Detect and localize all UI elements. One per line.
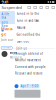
button[interactable]: Learn more <box>1 46 12 49</box>
staticText: A life that <box>1 12 9 19</box>
button[interactable]: Delete <box>34 6 36 9</box>
staticText: Wellness <box>9 56 21 59</box>
staticText: Apr 7 · 9:00 <box>21 84 39 88</box>
staticText: Through a blend of <box>15 52 43 55</box>
staticText: Natural <box>16 26 25 29</box>
staticText: 9:41 <box>2 0 9 5</box>
staticText: Tune in and take <box>16 19 39 22</box>
button[interactable]: Mark unread <box>40 6 42 9</box>
button[interactable]: More <box>52 6 54 9</box>
staticText: Recover and restore <box>15 72 43 75</box>
staticText: gets bow <box>1 21 7 28</box>
staticText: Get notified the <box>16 33 40 36</box>
staticText: Tuned in to the <box>16 12 39 15</box>
button[interactable]: Move <box>46 6 48 9</box>
staticText: Steps <box>9 51 16 54</box>
staticText: Manage <box>1 26 13 37</box>
staticText: Connect with people <box>15 65 46 69</box>
staticText: Gain true <box>16 40 29 43</box>
staticText: Join us <box>16 47 26 50</box>
button[interactable]: Archive <box>28 6 30 9</box>
staticText: Join our <box>1 38 13 42</box>
staticText: Suspended <box>1 5 21 10</box>
staticText: Mindful movement <box>15 58 41 62</box>
staticText: Learn more <box>2 47 11 49</box>
